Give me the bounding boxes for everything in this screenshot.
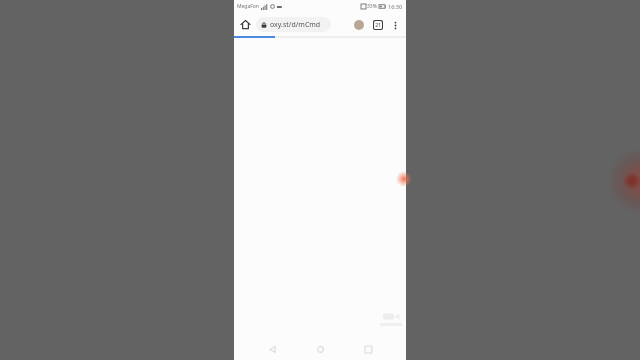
staticText: 21 <box>375 22 381 29</box>
button[interactable]: Home <box>237 16 254 33</box>
button[interactable]: More options <box>387 17 403 33</box>
staticText: oxy.st/d/mCmd <box>270 20 321 30</box>
staticText: MegaFon <box>237 3 259 10</box>
button[interactable]: Home <box>310 339 330 359</box>
button[interactable]: Back <box>262 339 282 359</box>
staticText: 33% <box>367 3 377 10</box>
button[interactable]: Tab switcher, 21 tabs <box>370 17 386 33</box>
button[interactable]: Recent apps <box>358 339 378 359</box>
button[interactable]: oxy.st/d/mCmd <box>256 17 331 32</box>
staticText: 16:30 <box>388 3 403 10</box>
button[interactable]: Account <box>351 17 367 33</box>
